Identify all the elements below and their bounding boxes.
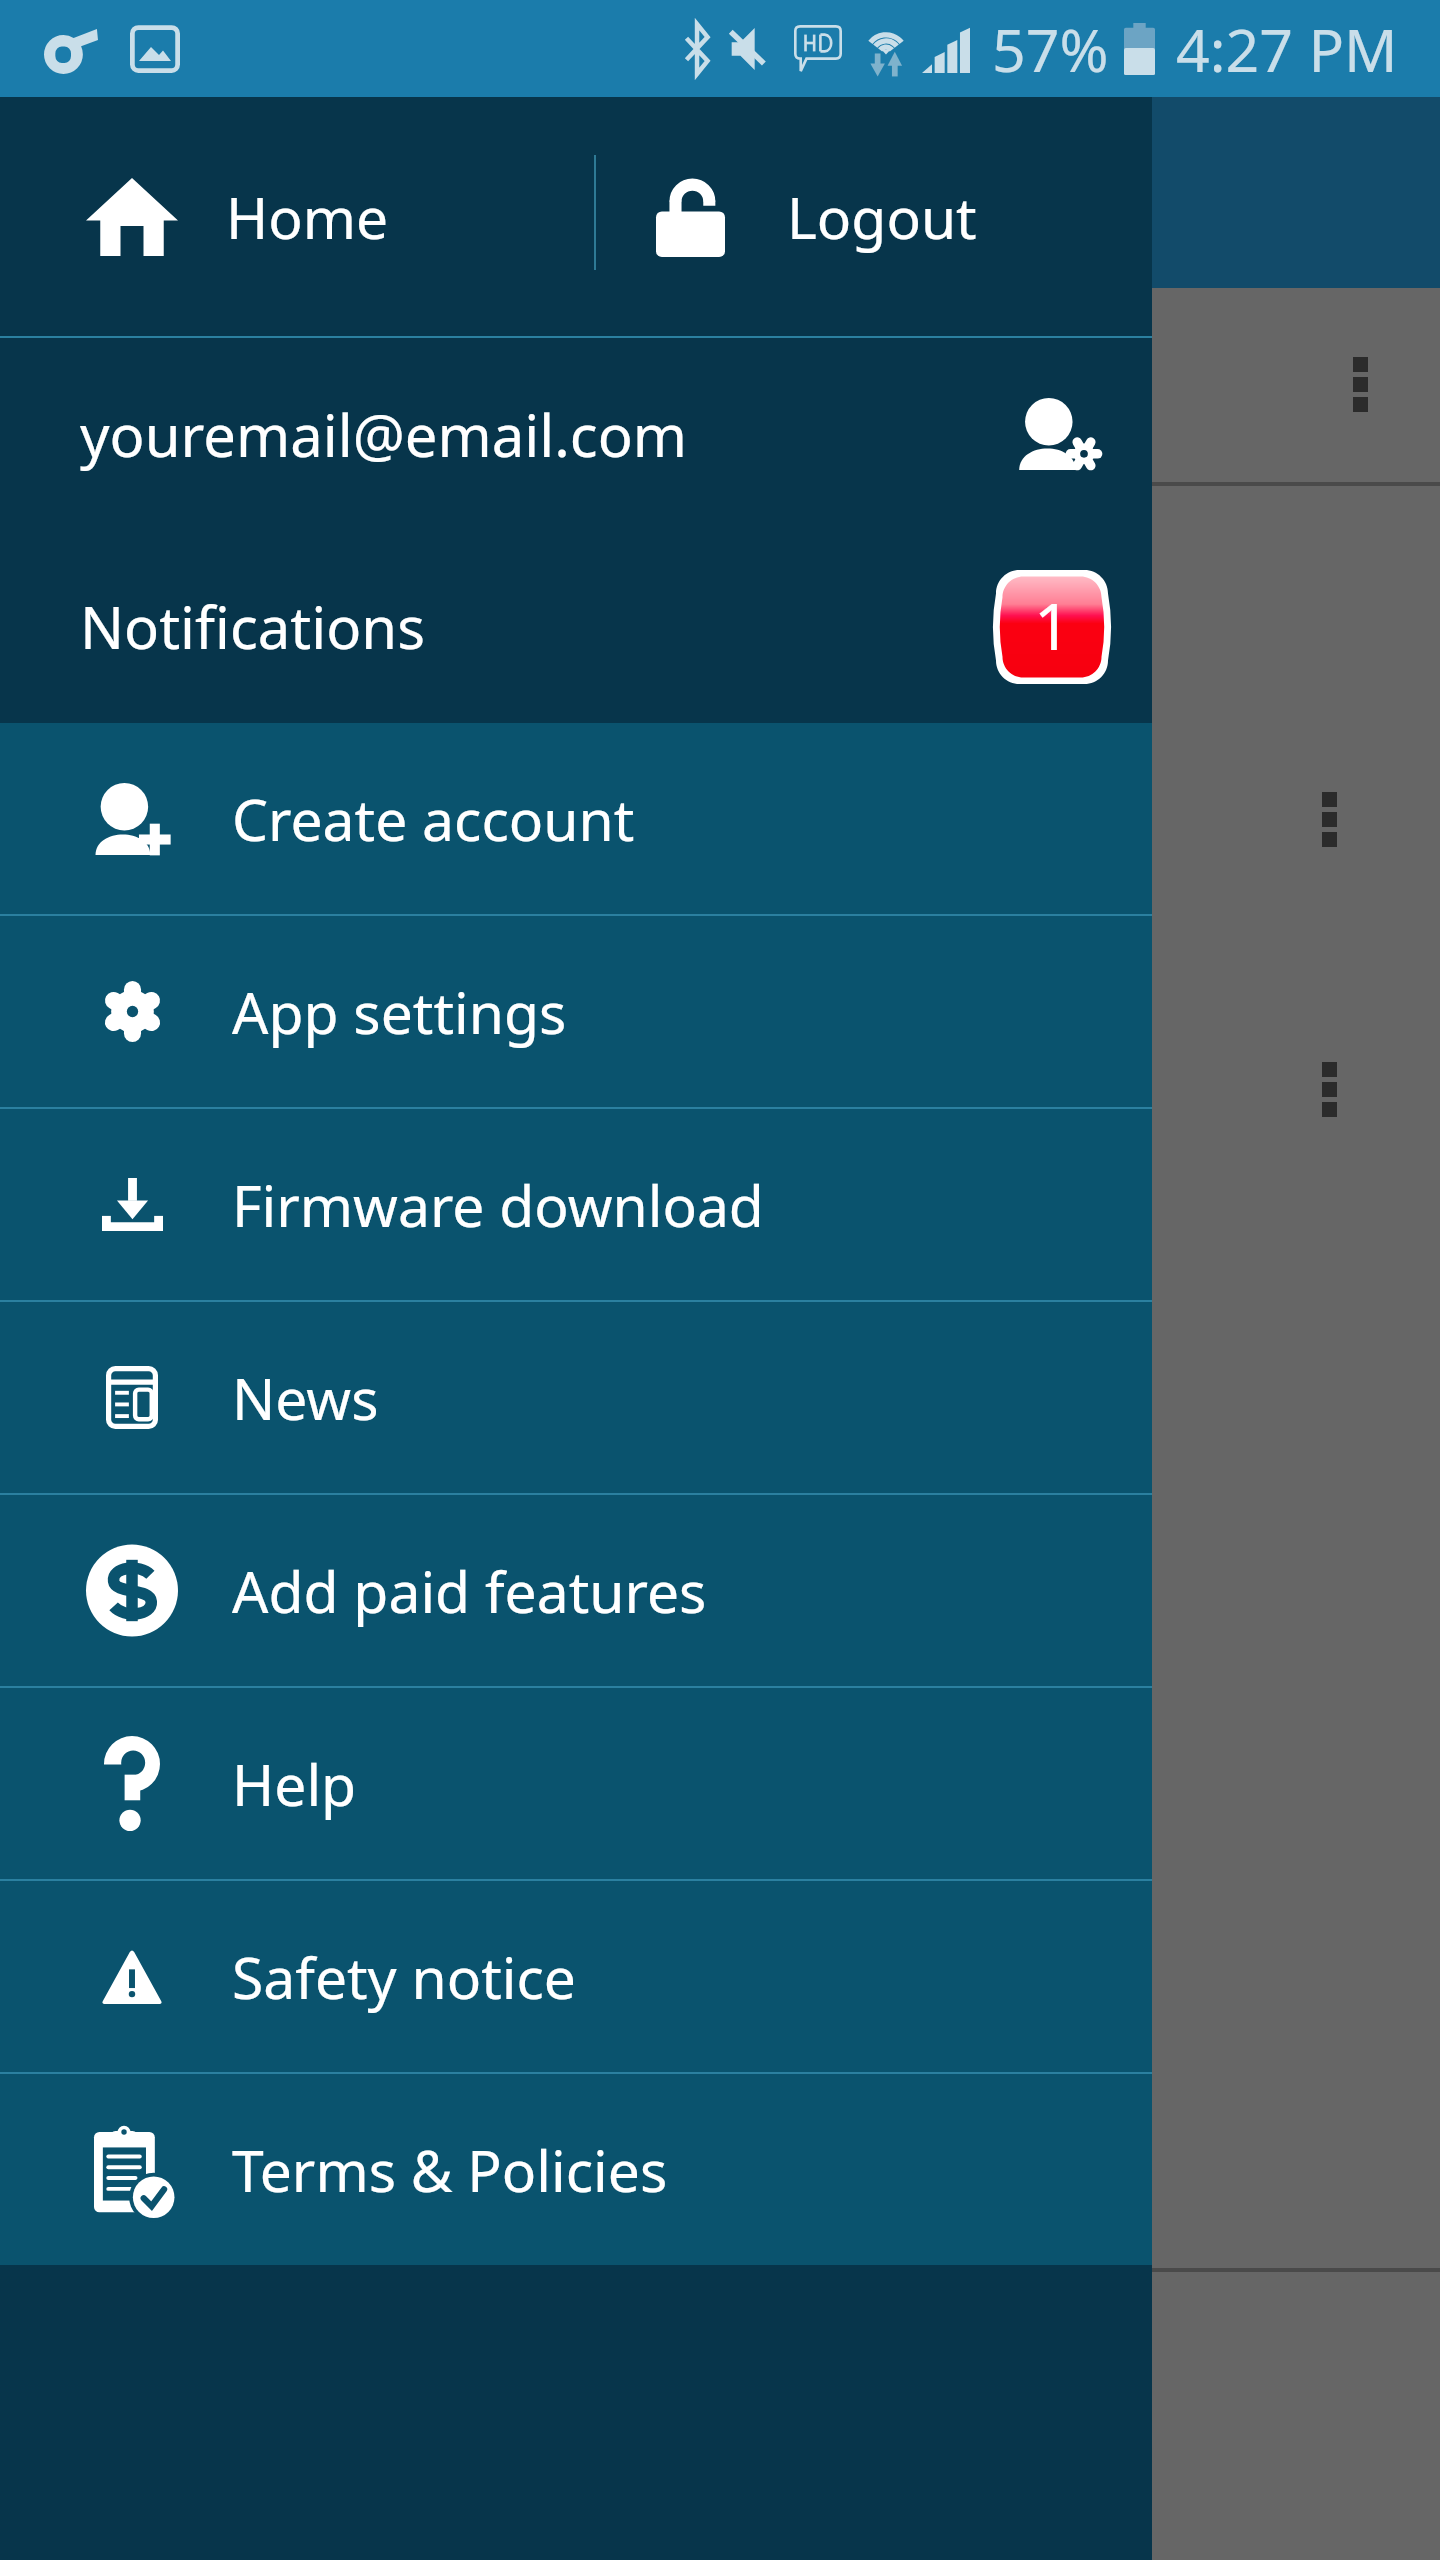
staticText: Firmware download (232, 1166, 764, 1244)
button[interactable]: App settings (0, 916, 1152, 1107)
staticText: Help (232, 1745, 357, 1823)
staticText: News (232, 1359, 379, 1437)
staticText: Create account (232, 780, 635, 858)
staticText: Logout (787, 178, 977, 256)
button[interactable]: More options (1324, 336, 1396, 432)
staticText: 57% (992, 9, 1109, 89)
button[interactable]: Safety notice (0, 1881, 1152, 2072)
staticText: Safety notice (232, 1938, 576, 2016)
staticText: 4:27 PM (1176, 9, 1398, 89)
staticText: youremail@email.com (80, 395, 687, 474)
button[interactable]: More options (1293, 771, 1365, 867)
staticText: 1 (1034, 582, 1071, 669)
button[interactable]: More options (1293, 1041, 1365, 1137)
button[interactable]: Terms & Policies (0, 2074, 1152, 2265)
button[interactable]: Logout (596, 97, 1152, 336)
button[interactable]: Notifications (0, 530, 1152, 723)
button[interactable]: Home (0, 97, 594, 336)
button[interactable]: Account settings (1006, 382, 1110, 486)
button[interactable]: Help (0, 1688, 1152, 1879)
button[interactable]: youremail@email.com (0, 338, 1152, 530)
button[interactable]: Add paid features (0, 1495, 1152, 1686)
staticText: App settings (232, 973, 567, 1051)
button[interactable]: Firmware download (0, 1109, 1152, 1300)
staticText: Notifications (80, 587, 425, 666)
staticText: Add paid features (232, 1552, 707, 1630)
staticText: Terms & Policies (232, 2131, 668, 2209)
button[interactable]: News (0, 1302, 1152, 1493)
button[interactable]: Create account (0, 723, 1152, 914)
staticText: Home (226, 178, 389, 256)
